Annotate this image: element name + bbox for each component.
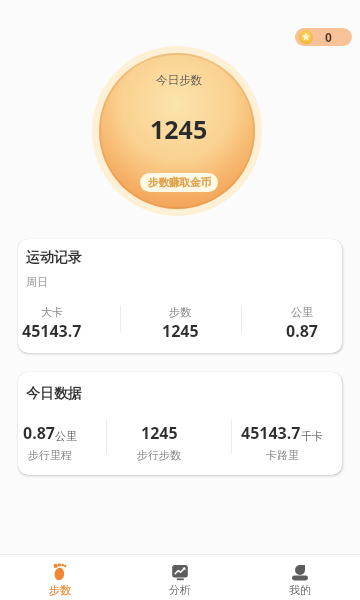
button[interactable]: 步数: [0, 555, 120, 600]
staticText: 45143.7: [241, 422, 301, 444]
button[interactable]: 今日数据: [18, 372, 342, 475]
staticText: 0.87: [23, 422, 55, 444]
staticText: 1245: [150, 112, 208, 146]
staticText: 卡路里: [266, 448, 299, 462]
staticText: 分析: [169, 583, 191, 597]
staticText: 步数赚取金币: [148, 176, 211, 189]
staticText: 运动记录: [26, 249, 82, 267]
staticText: 大卡: [41, 305, 63, 319]
staticText: 今日步数: [156, 73, 202, 87]
staticText: 步数: [49, 583, 71, 597]
staticText: 步行里程: [28, 448, 72, 462]
staticText: 步数: [169, 305, 191, 319]
staticText: 我的: [289, 583, 311, 597]
staticText: 1245: [141, 422, 178, 444]
staticText: 1245: [162, 320, 199, 342]
staticText: 今日数据: [26, 385, 82, 403]
staticText: 公里: [291, 305, 313, 319]
staticText: 公里: [55, 429, 77, 443]
staticText: 周日: [26, 275, 48, 289]
staticText: 千卡: [301, 429, 323, 443]
button[interactable]: 运动记录: [18, 239, 342, 353]
staticText: 45143.7: [22, 320, 82, 342]
staticText: 0.87: [286, 320, 318, 342]
button[interactable]: 步数赚取金币: [140, 173, 218, 192]
button[interactable]: 0: [295, 28, 352, 46]
staticText: 步行步数: [137, 448, 181, 462]
button[interactable]: 分析: [120, 555, 240, 600]
staticText: 0: [325, 29, 332, 45]
button[interactable]: 我的: [240, 555, 360, 600]
